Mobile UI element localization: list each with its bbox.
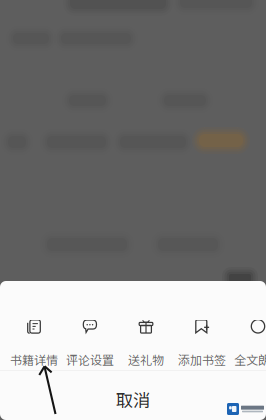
button[interactable]: 评论设置 [62,319,118,368]
staticText: 添加书签 [178,351,226,368]
button[interactable]: 送礼物 [118,319,174,368]
staticText: 送礼物 [128,351,164,368]
button[interactable]: 书籍详情 [6,319,62,368]
staticText: 评论设置 [66,351,114,368]
staticText: 全文朗读 [234,351,266,368]
staticText: 取消 [116,387,150,412]
staticText: 书籍详情 [10,351,58,368]
button[interactable]: 全文朗读 [230,319,266,368]
button[interactable]: 添加书签 [174,319,230,368]
button[interactable]: 取消 [0,371,266,420]
